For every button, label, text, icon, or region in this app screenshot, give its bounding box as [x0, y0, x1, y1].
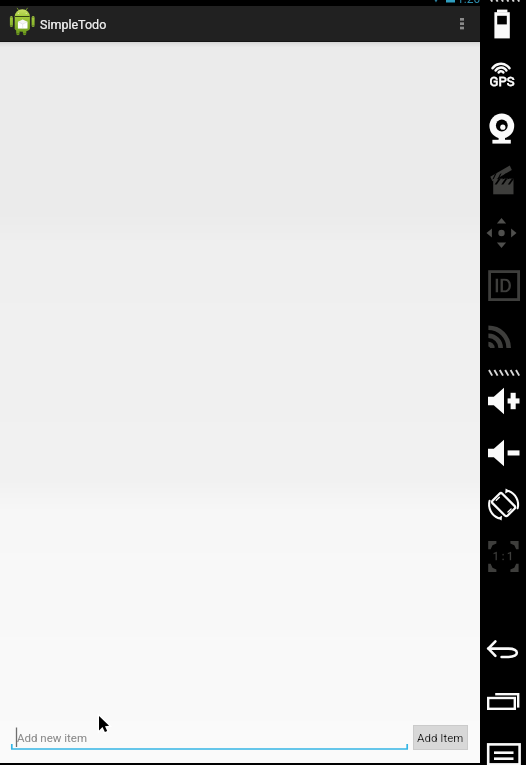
- button[interactable]: Overview: [482, 683, 524, 725]
- button[interactable]: GPS: [482, 57, 524, 99]
- button[interactable]: Back: [482, 631, 524, 673]
- button[interactable]: Record screen: [482, 161, 524, 203]
- staticText: GPS: [485, 74, 519, 89]
- button[interactable]: Volume down: [482, 433, 524, 475]
- button[interactable]: Volume up: [482, 381, 524, 423]
- staticText: 1:20: [457, 0, 481, 6]
- button[interactable]: Device ID: [482, 266, 524, 308]
- staticText: SimpleTodo: [40, 17, 107, 32]
- staticText: Add new item: [17, 731, 88, 744]
- button[interactable]: Zoom 1 to 1: [482, 535, 524, 577]
- button[interactable]: Power: [482, 6, 524, 48]
- button[interactable]: Add new item: [11, 725, 408, 750]
- button[interactable]: Add Item: [413, 725, 468, 750]
- button[interactable]: Camera: [482, 109, 524, 151]
- button[interactable]: Menu: [482, 731, 524, 765]
- staticText: Add Item: [417, 731, 464, 744]
- staticText: 1 : 1: [486, 550, 520, 563]
- button[interactable]: Directional pad: [482, 214, 524, 256]
- button[interactable]: More options: [442, 6, 480, 42]
- staticText: ID: [486, 274, 520, 296]
- button[interactable]: Cellular: [482, 316, 524, 358]
- button[interactable]: Rotate: [482, 485, 524, 527]
